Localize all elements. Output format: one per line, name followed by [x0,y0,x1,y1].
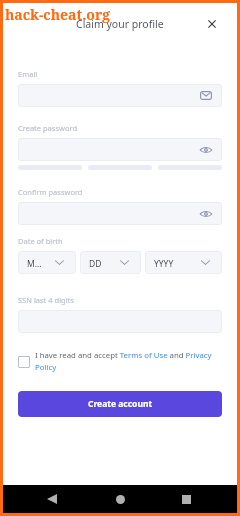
staticText: Email [18,69,38,79]
staticText: hack-cheat.org [5,5,111,24]
button[interactable]: Home [110,489,130,509]
button[interactable]: Back [42,489,62,509]
staticText: Date of birth [18,236,63,246]
button[interactable]: Recents [176,489,196,509]
button[interactable]: M... [18,251,76,274]
staticText: Create password [18,123,78,133]
button[interactable] [18,202,222,225]
staticText: I have read and accept Terms of Use and … [35,350,225,372]
button[interactable]: YYYY [145,251,222,274]
button[interactable]: Accept terms and conditions [18,356,30,368]
button[interactable]: Close [200,12,224,36]
button[interactable]: Create account [18,391,222,417]
staticText: SSN last 4 digits [18,295,74,305]
button[interactable]: DD [80,251,141,274]
staticText: M... [27,258,42,270]
staticText: Claim your profile [76,17,164,31]
button[interactable] [18,138,222,161]
staticText: YYYY [154,258,174,270]
staticText: DD [89,258,102,270]
button[interactable] [18,84,222,107]
staticText: Create account [88,398,153,410]
staticText: Confirm password [18,187,83,197]
